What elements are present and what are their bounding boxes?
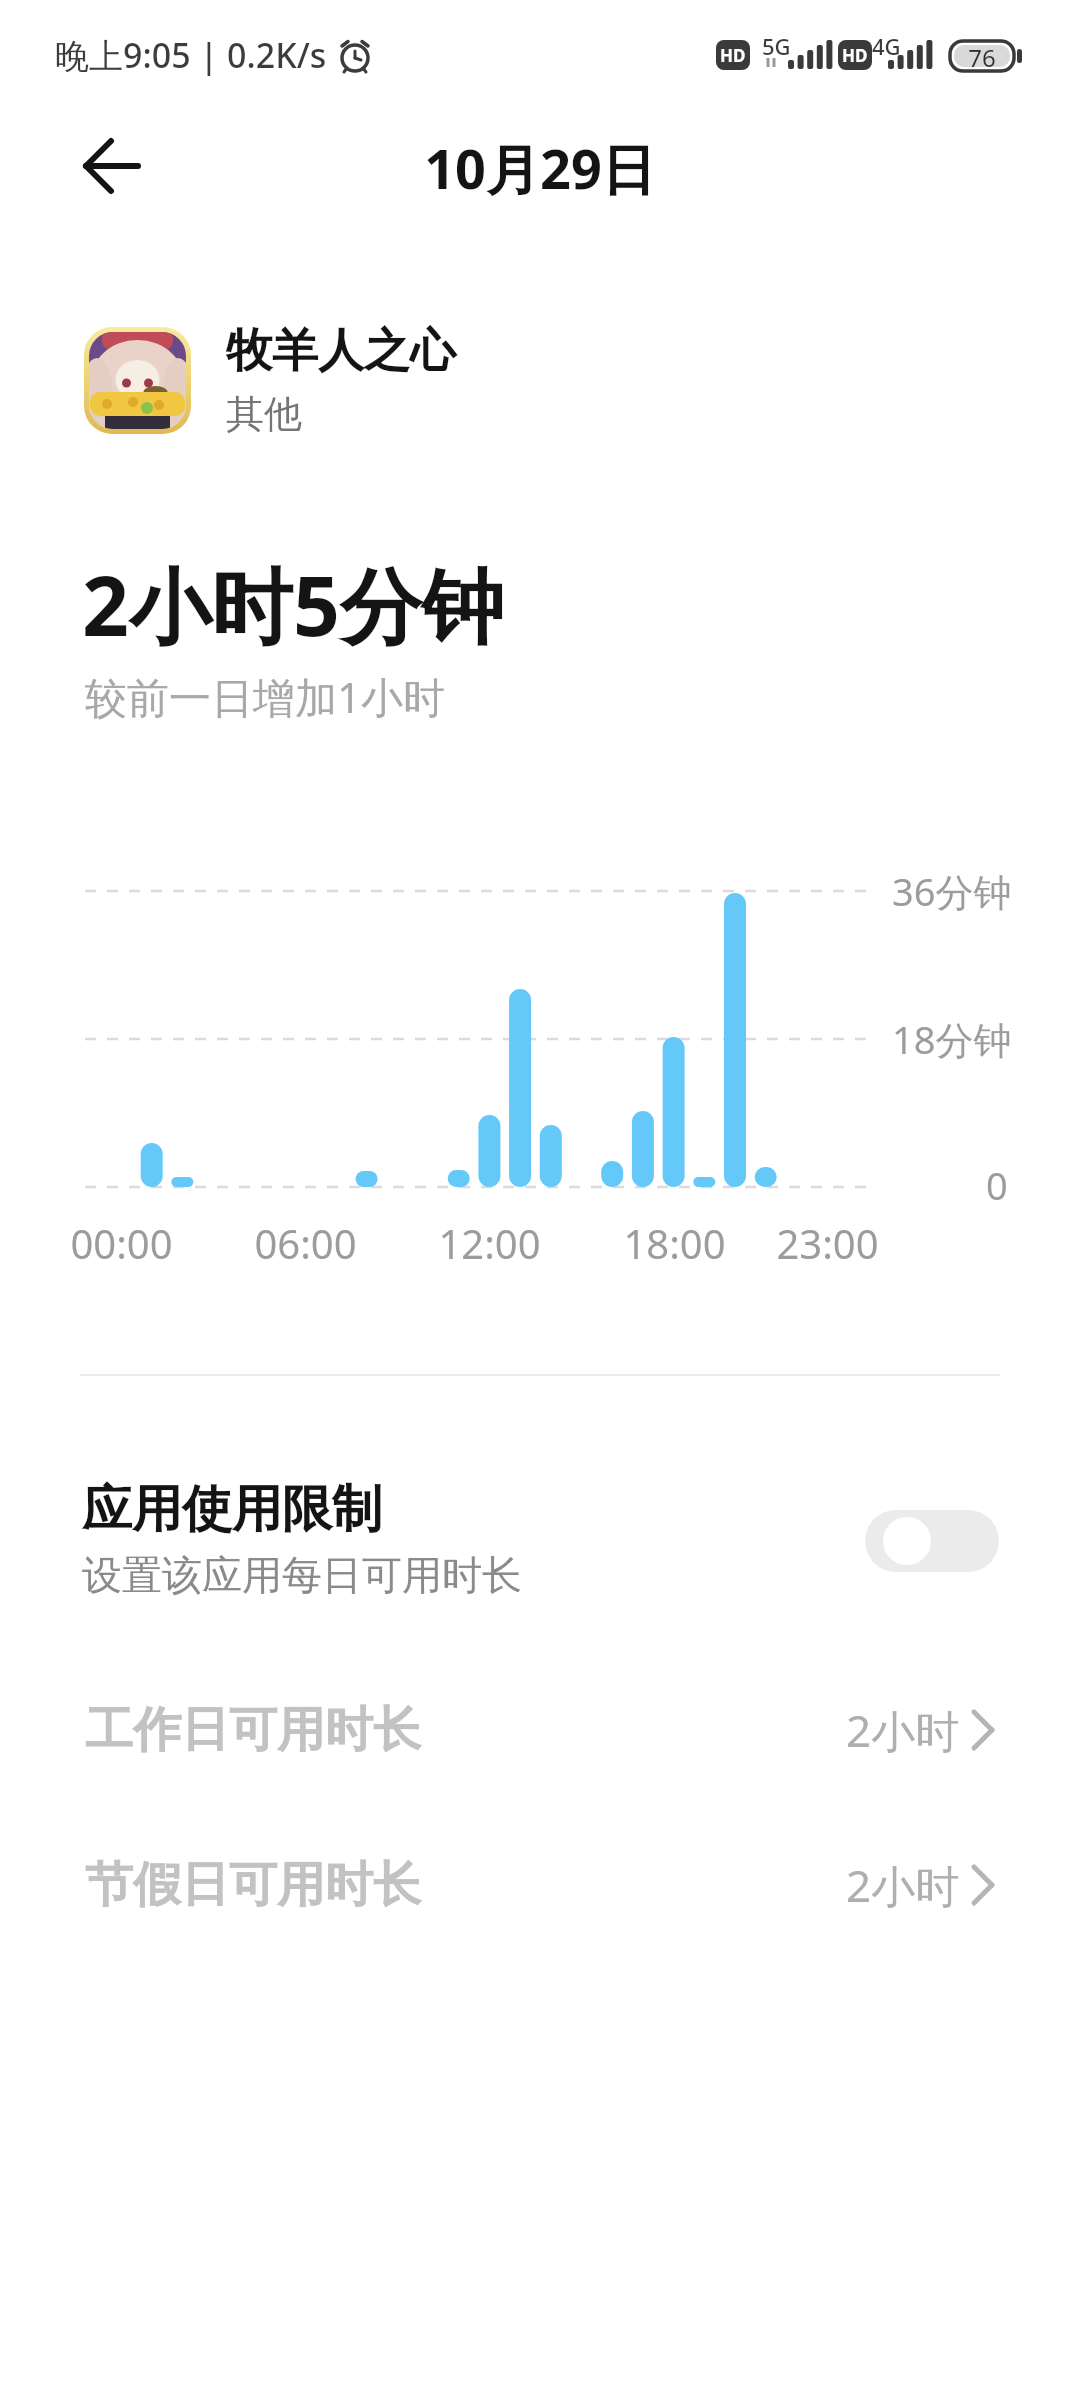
staticText: HD [842,44,868,67]
staticText: 其他 [226,390,302,438]
staticText: 18分钟 [892,1013,1012,1065]
staticText: 10月29日 [424,131,656,201]
staticText: 工作日可用时长 [85,1700,421,1760]
staticText: HD [720,44,746,67]
staticText: 06:00 [254,1216,357,1270]
staticText: 2小时 [846,1700,960,1760]
staticText: 2小时5分钟 [82,548,504,658]
button[interactable] [60,1460,1020,1620]
staticText: 5G [762,31,791,61]
button[interactable] [60,1675,1020,1785]
staticText: 0 [986,1159,1008,1211]
staticText: 较前一日增加1小时 [85,668,446,725]
staticText: 18:00 [623,1216,726,1270]
staticText: 76 [968,41,996,71]
staticText: 23:00 [776,1216,879,1270]
staticText: 2小时 [846,1855,960,1915]
staticText: 12:00 [438,1216,541,1270]
staticText: 晚上9:05 | 0.2K/s [55,32,327,78]
button[interactable] [84,327,1000,437]
staticText: 应用使用限制 [82,1478,382,1541]
button[interactable] [865,1510,999,1572]
button[interactable] [60,1830,1020,1940]
staticText: 4G [872,31,901,61]
staticText: 设置该应用每日可用时长 [82,1550,522,1600]
staticText: 36分钟 [892,865,1012,917]
staticText: 00:00 [70,1216,173,1270]
staticText: 节假日可用时长 [85,1855,421,1915]
button[interactable] [70,131,150,201]
staticText: 牧羊人之心 [226,322,456,380]
